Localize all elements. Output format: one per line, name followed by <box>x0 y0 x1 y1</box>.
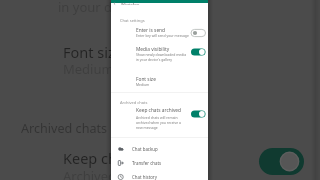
staticText: Medium <box>136 82 150 87</box>
button[interactable]: Back <box>113 2 208 5</box>
staticText: Chat history <box>132 174 157 180</box>
other: Back <box>113 2 116 5</box>
staticText: Archived chats <box>120 100 148 105</box>
button[interactable]: Switch <box>191 110 206 118</box>
other: Transfer chats <box>117 159 125 167</box>
staticText: Keep ch <box>63 148 117 168</box>
staticText: Archived chats will remain archived when… <box>136 115 181 130</box>
button[interactable]: Keep chats archived <box>136 107 181 114</box>
staticText: Medium <box>63 60 114 78</box>
staticText: Archived chats <box>21 120 108 137</box>
button[interactable]: Media visibility <box>136 46 170 53</box>
button[interactable]: Enter is send <box>136 27 165 34</box>
staticText: Show newly downloaded media in your devi… <box>136 52 187 62</box>
other: Chat history <box>117 173 125 180</box>
staticText: Transfer chats <box>132 160 162 166</box>
button[interactable]: Transfer chats <box>111 157 208 169</box>
button[interactable]: Chat backup <box>111 143 208 155</box>
staticText: Chat backup <box>132 146 158 152</box>
button[interactable]: Font size <box>136 76 156 83</box>
button[interactable]: Keep chats archived toggle <box>259 148 304 175</box>
staticText: WhatsApp <box>121 2 140 5</box>
staticText: Chat settings <box>120 18 145 23</box>
button[interactable]: Switch <box>191 48 206 56</box>
staticText: Font siz <box>63 42 115 62</box>
button[interactable]: Switch <box>191 29 206 37</box>
button[interactable]: Chat history <box>111 171 208 180</box>
other: Chat backup <box>117 145 125 153</box>
staticText: Archived <box>63 167 116 180</box>
staticText: Enter key will send your message <box>136 33 189 38</box>
staticText: in your d <box>58 0 113 16</box>
